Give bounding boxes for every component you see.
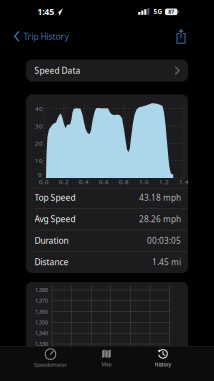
- staticText: 1,330: [35, 340, 48, 348]
- staticText: Speedometer: [34, 361, 67, 368]
- staticText: 10: [35, 156, 43, 165]
- staticText: 87: [168, 8, 174, 15]
- staticText: 20: [35, 139, 43, 148]
- staticText: 1,340: [35, 330, 48, 337]
- button[interactable]: History: [143, 345, 183, 371]
- staticText: Map: [101, 361, 111, 368]
- staticText: 1:45: [37, 6, 54, 18]
- staticText: 1,350: [35, 319, 48, 326]
- staticText: 5G: [153, 7, 162, 16]
- staticText: 1,380: [35, 286, 48, 294]
- staticText: Avg Speed: [34, 213, 75, 225]
- staticText: 1.4: [179, 178, 189, 186]
- staticText: 00:03:05: [147, 235, 181, 246]
- staticText: 40: [35, 104, 43, 113]
- staticText: 43.18 mph: [139, 192, 181, 203]
- button[interactable]: Speed Data: [26, 59, 188, 81]
- staticText: 1,360: [35, 308, 48, 315]
- staticText: 1,370: [35, 297, 48, 304]
- staticText: 30: [35, 122, 43, 130]
- staticText: 0.0: [39, 178, 49, 186]
- staticText: Distance: [34, 256, 68, 268]
- staticText: 1.45 mi: [152, 256, 181, 268]
- staticText: 28.26 mph: [139, 213, 181, 225]
- staticText: Top Speed: [34, 192, 75, 203]
- staticText: 0.2: [59, 178, 69, 186]
- button[interactable]: Back to Trip History: [14, 30, 134, 42]
- staticText: 0.6: [99, 178, 109, 186]
- button[interactable]: Speedometer: [22, 345, 78, 371]
- staticText: History: [154, 361, 171, 368]
- staticText: 0.8: [119, 178, 129, 186]
- staticText: 0.4: [79, 178, 89, 186]
- button[interactable]: Map: [86, 345, 126, 371]
- staticText: Duration: [34, 235, 68, 246]
- button[interactable]: Share: [176, 29, 185, 44]
- staticText: 1.0: [139, 178, 149, 186]
- staticText: Trip History: [23, 30, 68, 42]
- staticText: Speed Data: [34, 65, 80, 76]
- staticText: 1.2: [159, 178, 169, 186]
- staticText: 0: [38, 170, 42, 179]
